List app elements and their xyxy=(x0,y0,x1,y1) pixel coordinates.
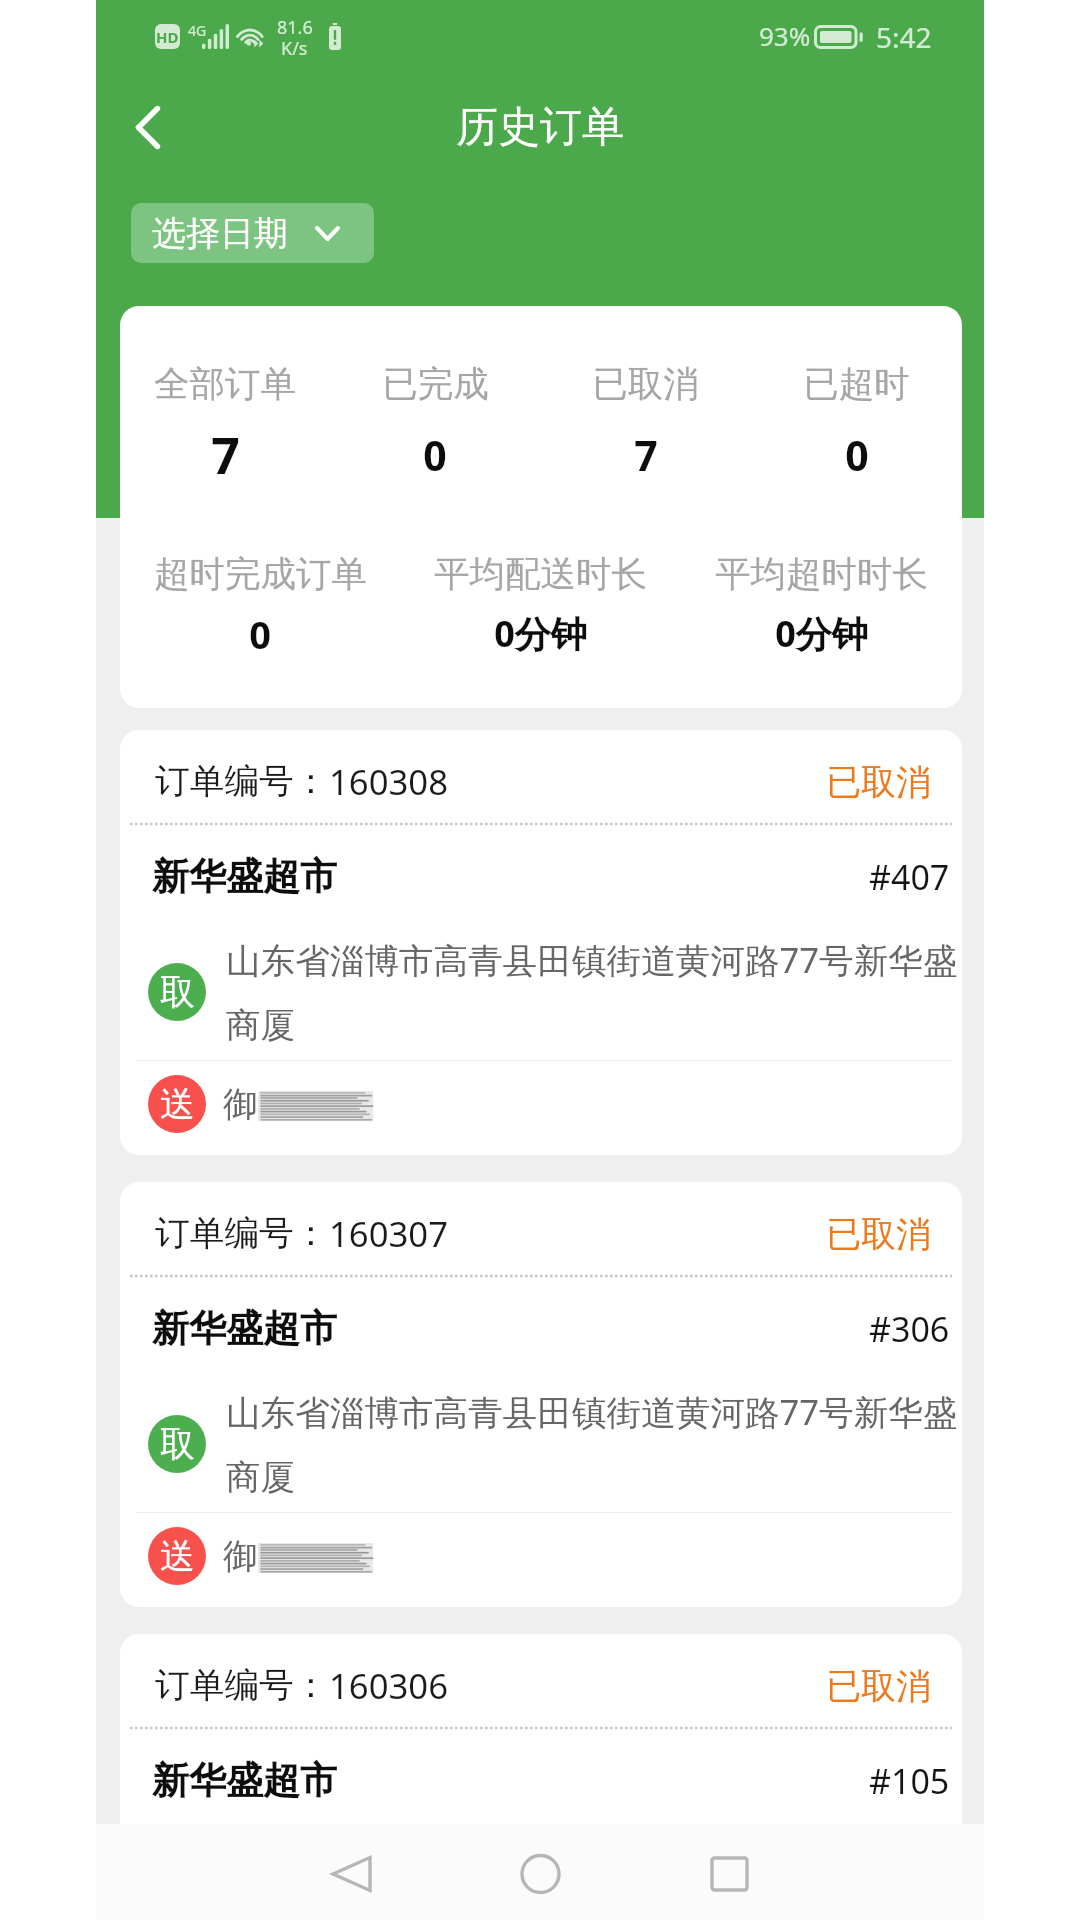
staticText: 送 xyxy=(160,1534,195,1578)
staticText: 山东省淄博市高青县田镇街道黄河路77号新华盛商厦 xyxy=(226,1840,962,1920)
staticText: K/s xyxy=(281,36,308,61)
button[interactable]: 超时完成订单 xyxy=(120,552,400,660)
staticText: #105 xyxy=(869,1758,950,1804)
staticText: 7 xyxy=(634,427,658,483)
button[interactable]: Home xyxy=(495,1829,585,1919)
staticText: HD xyxy=(156,27,179,47)
staticText: 御 xyxy=(223,1083,258,1127)
staticText: #407 xyxy=(869,854,950,900)
button[interactable]: 订单编号： xyxy=(120,730,962,1155)
staticText: 0 xyxy=(423,427,447,483)
button[interactable]: 平均配送时长 xyxy=(400,552,681,658)
staticText: 5:42 xyxy=(876,18,932,56)
staticText: 160308 xyxy=(329,758,449,805)
staticText: 0 xyxy=(249,608,271,660)
button[interactable]: 已完成 xyxy=(330,362,540,483)
staticText: 御 xyxy=(223,1535,258,1579)
button[interactable]: 订单编号： xyxy=(120,1182,962,1607)
staticText: 历史订单 xyxy=(96,101,984,154)
staticText: #306 xyxy=(869,1306,950,1352)
staticText: 选择日期 xyxy=(152,212,288,255)
staticText: 0 xyxy=(845,427,869,483)
staticText: 已取消 xyxy=(826,1212,931,1256)
button[interactable]: 全部订单 xyxy=(120,362,330,489)
button[interactable]: 选择日期 xyxy=(131,203,374,263)
staticText: 7 xyxy=(211,421,240,489)
button[interactable]: Recents xyxy=(684,1829,774,1919)
staticText: 送 xyxy=(160,1082,195,1126)
staticText: 已完成 xyxy=(382,362,489,407)
staticText: 81.6 xyxy=(277,15,313,40)
staticText: 超时完成订单 xyxy=(154,552,367,597)
staticText: 0分钟 xyxy=(775,609,868,658)
staticText: 新华盛超市 xyxy=(152,1757,337,1804)
staticText: 已取消 xyxy=(826,1664,931,1708)
staticText: 0分钟 xyxy=(494,609,587,658)
staticText: 新华盛超市 xyxy=(152,853,337,900)
staticText: 平均配送时长 xyxy=(434,552,647,597)
staticText: 山东省淄博市高青县田镇街道黄河路77号新华盛商厦 xyxy=(226,1388,962,1499)
staticText: 4G xyxy=(188,21,207,40)
staticText: 已取消 xyxy=(826,760,931,804)
staticText: 平均超时时长 xyxy=(715,552,928,597)
button[interactable]: 已超时 xyxy=(751,362,962,483)
staticText: 取 xyxy=(160,970,195,1014)
staticText: 已超时 xyxy=(803,362,910,407)
staticText: 93% xyxy=(759,18,811,53)
staticText: 全部订单 xyxy=(154,362,296,407)
staticText: 新华盛超市 xyxy=(152,1305,337,1352)
button[interactable]: 已取消 xyxy=(540,362,751,483)
staticText: 已取消 xyxy=(592,362,699,407)
staticText: 订单编号： xyxy=(155,1212,329,1256)
staticText: 160306 xyxy=(329,1662,449,1709)
button[interactable]: Back xyxy=(306,1829,396,1919)
staticText: 取 xyxy=(160,1422,195,1466)
staticText: 订单编号： xyxy=(155,1664,329,1708)
staticText: 160307 xyxy=(329,1210,449,1257)
button[interactable]: 订单编号： xyxy=(120,1634,962,1920)
staticText: 山东省淄博市高青县田镇街道黄河路77号新华盛商厦 xyxy=(226,936,962,1047)
staticText: 订单编号： xyxy=(155,760,329,804)
button[interactable]: Back xyxy=(112,91,184,163)
button[interactable]: 平均超时时长 xyxy=(681,552,962,658)
